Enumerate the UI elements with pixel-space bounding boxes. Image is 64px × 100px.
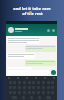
- button[interactable]: [25, 45, 56, 52]
- button[interactable]: Video call: [6, 24, 57, 36]
- button[interactable]: [7, 37, 40, 44]
- button[interactable]: Call: [52, 29, 55, 32]
- button[interactable]: [25, 60, 56, 66]
- button[interactable]: Video call: [47, 29, 50, 32]
- button[interactable]: Send: [51, 70, 56, 75]
- button[interactable]: [7, 53, 35, 59]
- staticText: of the rest: [22, 11, 43, 16]
- staticText: and let it take care: [13, 6, 51, 11]
